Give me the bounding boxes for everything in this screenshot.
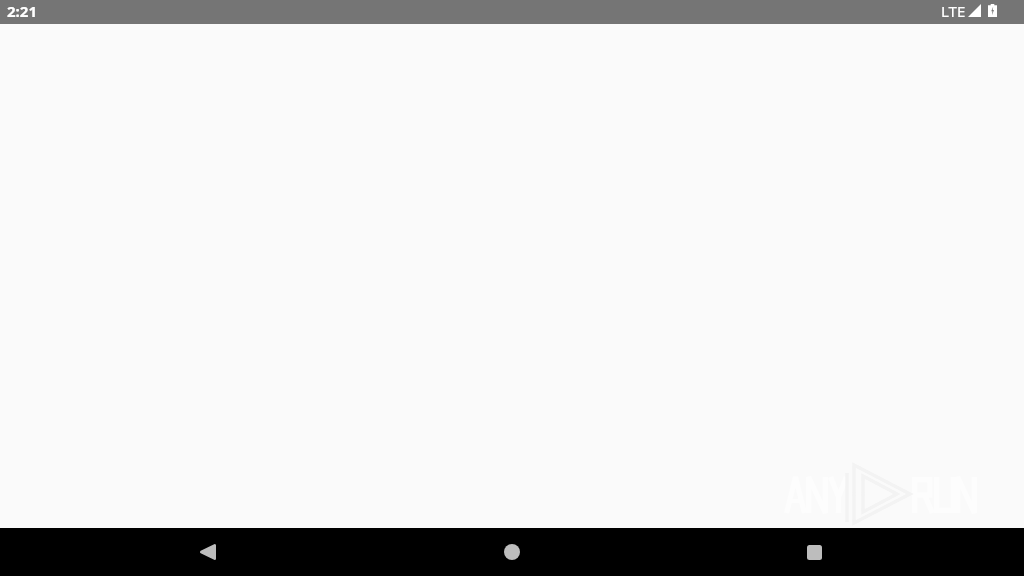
staticText: LTE — [941, 1, 966, 21]
staticText: 2:21 — [7, 1, 37, 21]
button[interactable]: Back — [184, 528, 232, 576]
button[interactable]: Recent apps — [790, 528, 838, 576]
button[interactable]: Home — [488, 528, 536, 576]
